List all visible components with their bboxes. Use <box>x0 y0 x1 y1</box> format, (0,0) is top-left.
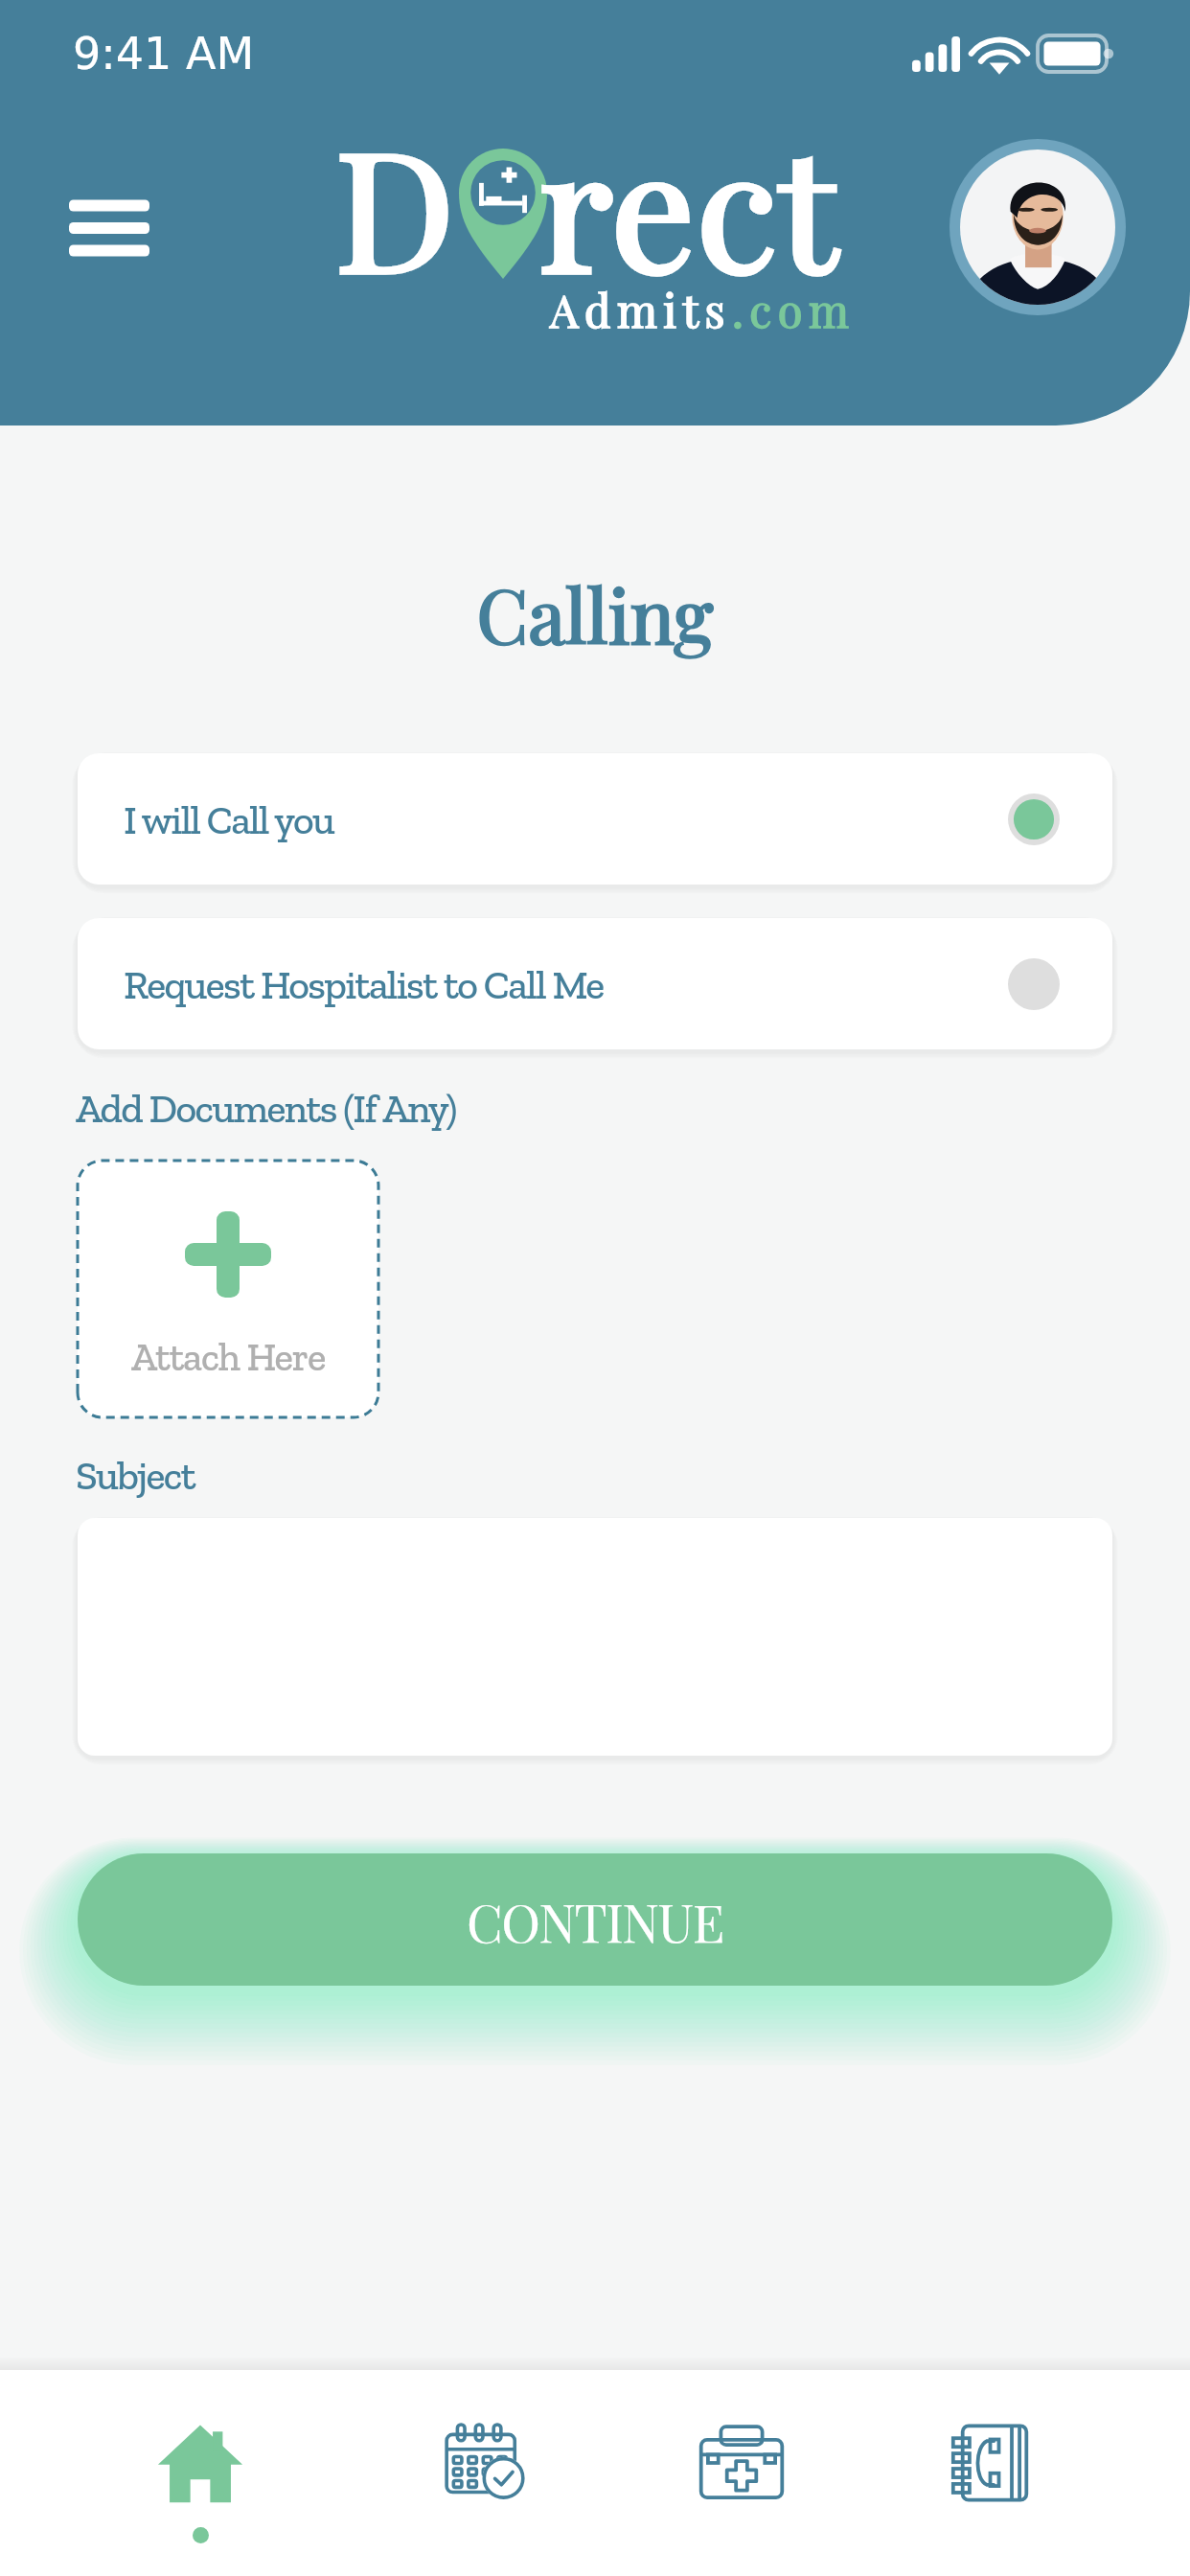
button[interactable]: Attach document <box>78 1161 378 1417</box>
button[interactable]: Contacts <box>895 2370 1094 2576</box>
staticText: Admits <box>550 279 732 339</box>
button[interactable]: CONTINUE <box>78 1853 1112 1986</box>
staticText: I will Call you <box>124 795 334 843</box>
button[interactable]: Appointments <box>387 2370 586 2576</box>
staticText: rect <box>539 94 839 313</box>
button[interactable]: Profile <box>950 139 1126 315</box>
staticText: Add Documents (If Any) <box>76 1084 456 1132</box>
staticText: Request Hospitalist to Call Me <box>124 960 604 1008</box>
button[interactable]: I will Call you <box>78 753 1112 885</box>
staticText: Subject <box>76 1451 195 1499</box>
button[interactable]: Request Hospitalist to Call Me <box>78 918 1112 1049</box>
staticText: CONTINUE <box>467 1885 723 1955</box>
staticText: 9:41 AM <box>73 28 255 80</box>
button[interactable]: Home <box>101 2370 300 2576</box>
staticText: D <box>335 94 455 313</box>
staticText: Attach Here <box>131 1333 326 1380</box>
staticText: Calling <box>0 563 1190 663</box>
staticText: .com <box>732 279 856 339</box>
button[interactable]: Medical kit <box>642 2370 841 2576</box>
button[interactable]: Menu <box>69 182 161 274</box>
